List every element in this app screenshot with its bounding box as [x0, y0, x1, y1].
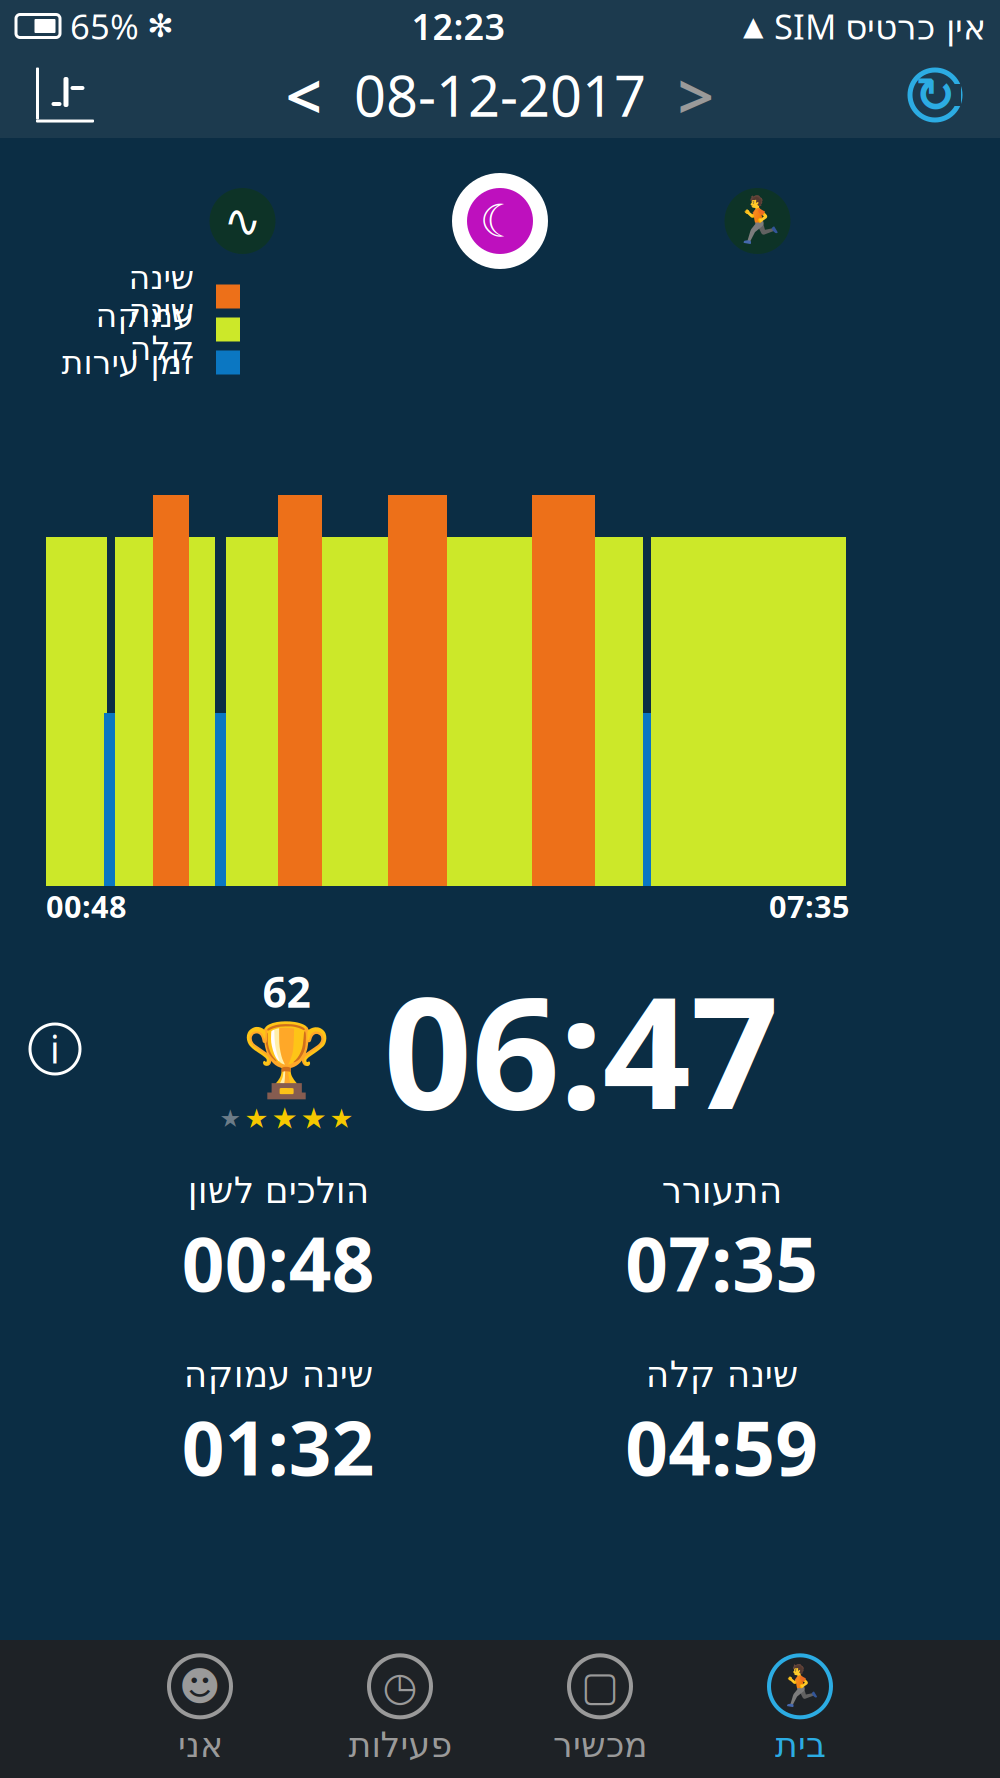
staticText: ▢	[581, 1664, 619, 1709]
staticText: 12:23	[411, 2, 505, 50]
staticText: ★	[271, 1102, 297, 1135]
staticText: 00:48	[182, 1213, 375, 1312]
staticText: 07:35	[625, 1213, 818, 1312]
staticText: 04:59	[625, 1397, 818, 1496]
staticText: ★	[300, 1102, 326, 1135]
staticText: <	[285, 52, 322, 137]
staticText: ★	[329, 1103, 353, 1134]
staticText: 07:35	[769, 886, 850, 926]
staticText: 65%	[70, 3, 139, 49]
staticText: שינה עמוקה	[183, 1354, 373, 1395]
staticText: זמן עירות	[61, 344, 194, 381]
staticText: 🏆	[241, 1020, 331, 1102]
staticText: SIM אין כרטיס	[774, 3, 986, 49]
staticText: אני	[177, 1725, 222, 1765]
staticText: התעורר	[661, 1170, 782, 1211]
staticText: ✻	[147, 8, 174, 44]
button[interactable]: Sync	[896, 57, 974, 133]
button[interactable]: Statistics	[26, 57, 104, 133]
staticText: 🏃	[775, 1663, 825, 1709]
button[interactable]: Activity	[702, 166, 812, 276]
staticText: ☻	[179, 1664, 221, 1709]
button[interactable]: בית	[700, 1650, 900, 1768]
button[interactable]: Heart rate	[187, 166, 297, 276]
staticText: 62	[262, 963, 310, 1020]
staticText: ★	[244, 1103, 268, 1134]
staticText: מכשיר	[552, 1725, 647, 1765]
button[interactable]: מכשיר	[500, 1650, 700, 1768]
staticText: 🏃	[729, 195, 785, 247]
staticText: שינה קלה	[128, 292, 194, 367]
staticText: פעילות	[348, 1725, 452, 1765]
staticText: שינה עמוקה	[95, 259, 194, 334]
staticText: 06:47	[383, 946, 778, 1152]
button[interactable]: Information	[20, 1014, 90, 1084]
staticText: ★	[219, 1105, 241, 1132]
staticText: ∿	[223, 195, 261, 247]
button[interactable]: פעילות	[300, 1650, 500, 1768]
button[interactable]: אני	[100, 1650, 300, 1768]
staticText: 08-12-2017	[354, 58, 646, 132]
staticText: 01:32	[182, 1397, 375, 1496]
button[interactable]: Next day	[660, 57, 732, 133]
staticText: ↻	[915, 68, 955, 122]
staticText: i	[50, 1024, 60, 1074]
button[interactable]: Previous day	[268, 57, 340, 133]
button[interactable]: Sleep	[445, 166, 555, 276]
staticText: ▲	[743, 11, 764, 41]
staticText: בית	[774, 1725, 825, 1765]
staticText: שינה קלה	[645, 1354, 798, 1395]
staticText: הולכים לשון	[187, 1170, 369, 1211]
staticText: ☾	[479, 195, 520, 247]
staticText: 00:48	[46, 886, 127, 926]
staticText: >	[677, 52, 714, 137]
staticText: ◷	[382, 1664, 417, 1709]
